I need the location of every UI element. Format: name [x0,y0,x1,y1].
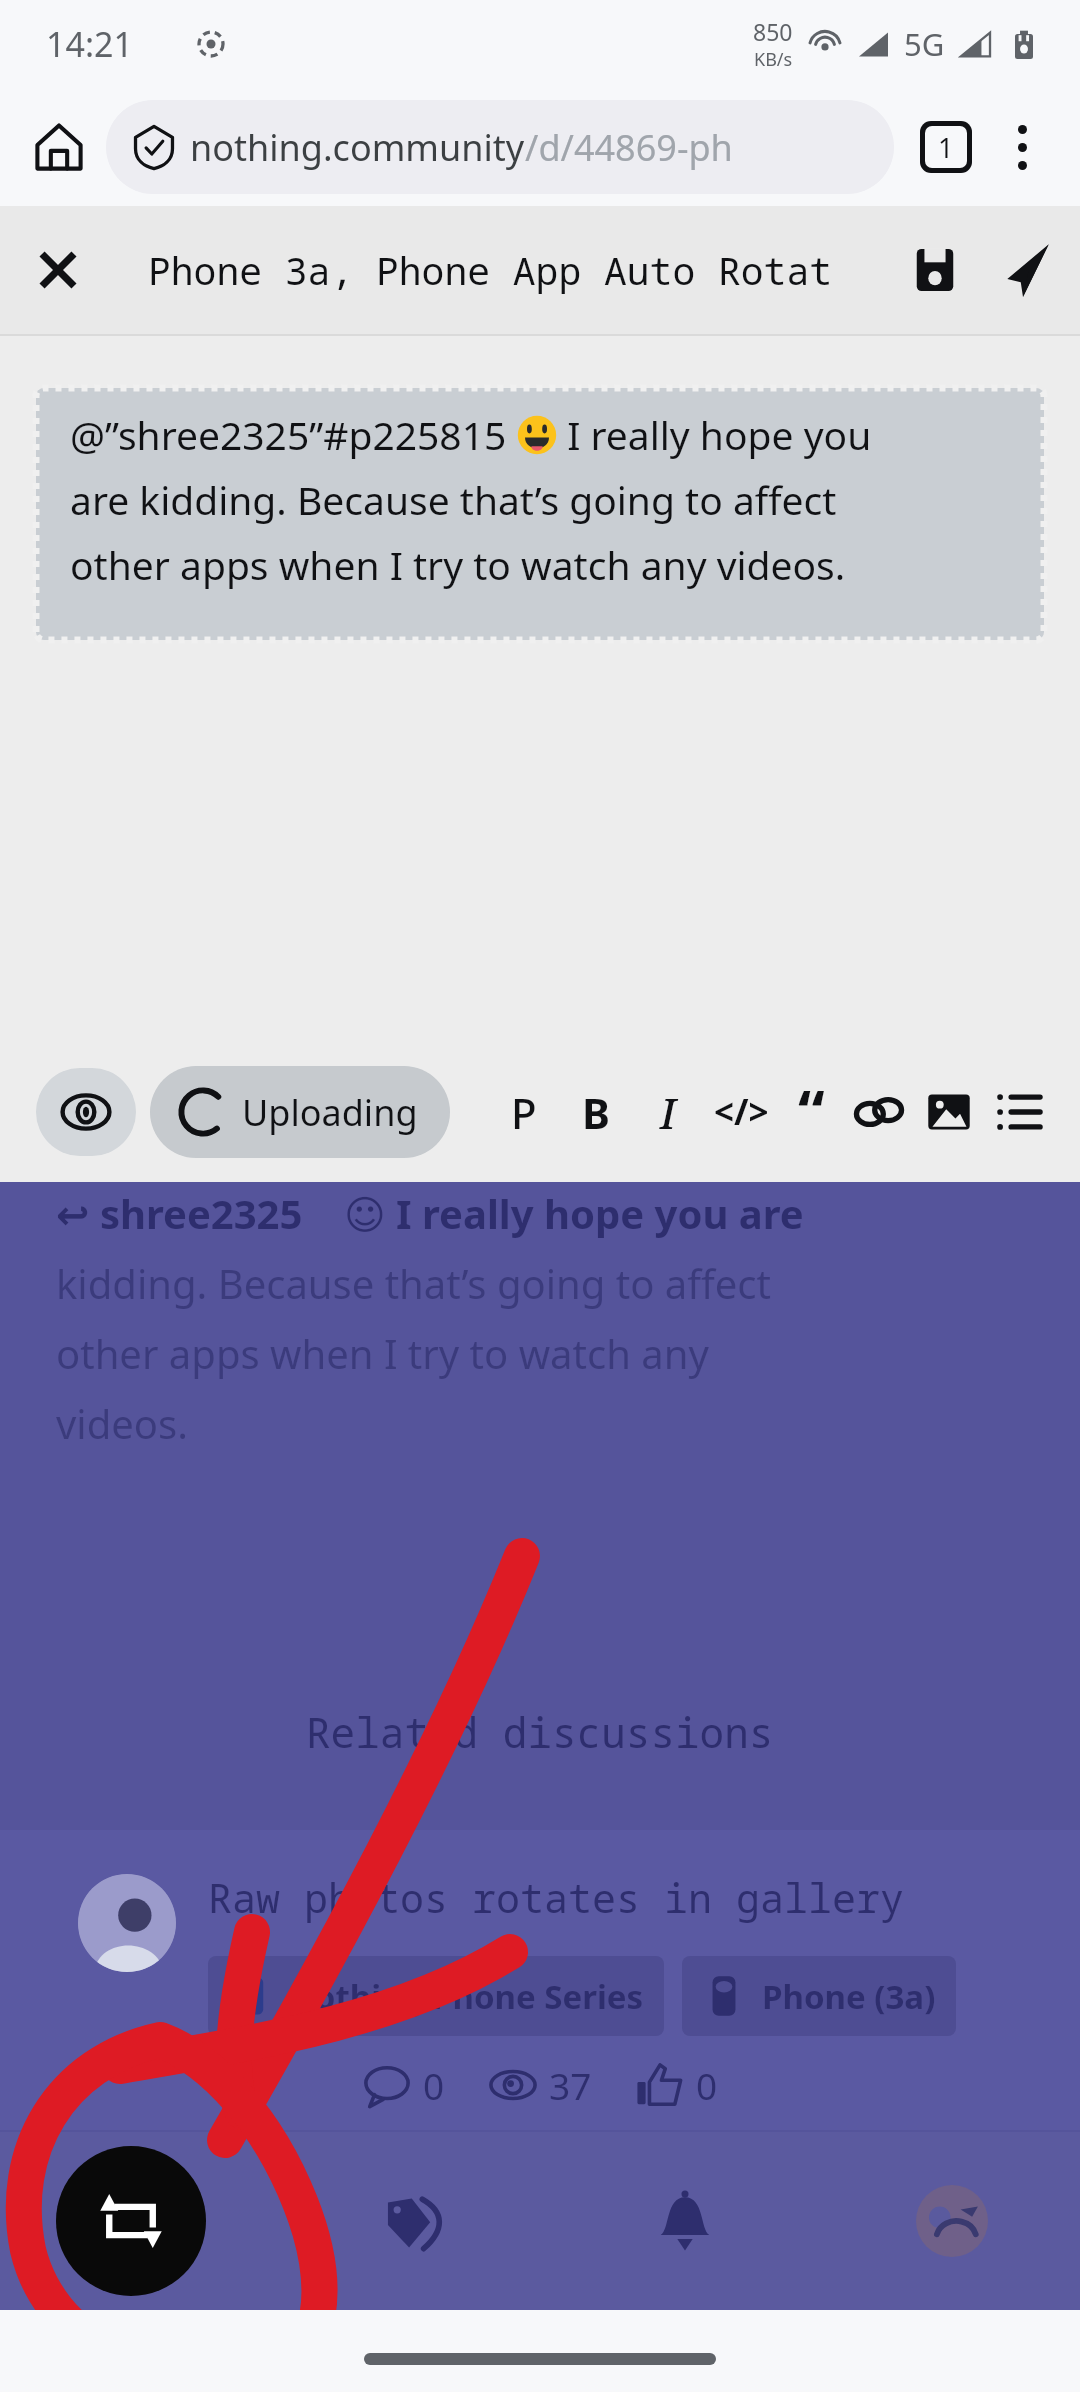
staticText: 0 [423,2060,445,2110]
staticText: “ [798,1069,825,1139]
button[interactable]: Tabs [906,107,986,187]
button[interactable]: Uploading [150,1066,450,1158]
staticText: are kidding. Because that’s going to aff… [70,473,837,526]
staticText: Phone (3a) [762,1974,936,2019]
button[interactable]: I [632,1069,704,1155]
staticText: Raw photos rotates in gallery [208,1870,904,1924]
staticText: @”shree2325”#p225815 [70,408,517,461]
button[interactable]: Notifications [629,2165,741,2277]
staticText: ↩ shree2325 ☺ I really hope you are [56,1186,804,1240]
staticText: kidding. Because that’s going to affect [56,1256,771,1310]
button[interactable]: Tags [361,2165,473,2277]
button[interactable]: Insert image [914,1069,984,1155]
staticText: other apps when I try to watch any video… [70,538,846,591]
staticText: </> [714,1088,769,1136]
staticText: 5G [904,23,945,65]
button[interactable]: Repost [56,2146,206,2296]
button[interactable]: nothing.community [106,100,894,194]
button[interactable]: Raw photos rotates in gallery [0,1830,1080,2130]
staticText: 850 [753,16,793,47]
staticText: /d/44869-ph [525,123,733,172]
button[interactable]: Preview [36,1068,136,1156]
staticText: I really hope you [557,408,872,461]
button[interactable]: Close [20,232,96,308]
staticText: 37 [549,2060,592,2110]
staticText: P [511,1084,537,1141]
staticText: 0 [696,2060,718,2110]
button[interactable]: B [560,1069,632,1155]
staticText: B [582,1084,610,1141]
button[interactable]: P [488,1069,560,1155]
button[interactable]: Profile [896,2165,1008,2277]
staticText: Nothing Phone Series [288,1974,644,2019]
staticText: Phone 3a, Phone App Auto Rotat [148,244,833,296]
staticText: I [660,1084,676,1141]
button[interactable]: Insert link [844,1069,914,1155]
staticText: Related discussions [306,1704,774,1760]
button[interactable]: Nothing Phone Series [208,1956,664,2036]
staticText: KB/s [754,47,793,72]
button[interactable]: Bulleted list [984,1069,1054,1155]
button[interactable]: Code block [704,1069,778,1155]
button[interactable]: Home [22,110,96,184]
button[interactable]: Send [990,237,1056,303]
staticText: nothing.community [190,123,525,172]
staticText: 14:21 [46,21,133,67]
button[interactable]: Quote [778,1069,844,1155]
staticText: Uploading [242,1088,418,1137]
button[interactable]: Save draft [904,239,966,301]
staticText: other apps when I try to watch any [56,1326,709,1380]
staticText: videos. [56,1396,188,1450]
button[interactable]: More options [986,111,1058,183]
staticText: 1 [938,129,954,166]
button[interactable]: Phone (3a) [682,1956,956,2036]
